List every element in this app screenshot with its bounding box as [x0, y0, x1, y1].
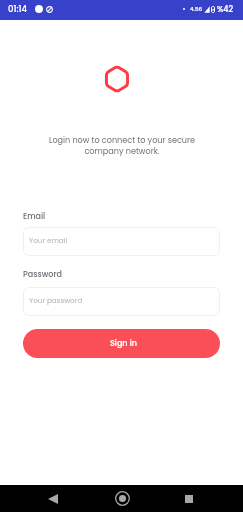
staticText: 01:14 [8, 3, 27, 15]
staticText: 4.56 [190, 5, 202, 13]
button[interactable]: Recent apps [169, 485, 209, 512]
button[interactable]: Home [102, 485, 142, 512]
staticText: %42 [217, 4, 234, 15]
button[interactable]: Sign in [23, 329, 220, 358]
staticText: Your password [29, 295, 83, 305]
button[interactable]: Back [33, 485, 73, 512]
staticText: Login now to connect to your secure comp… [37, 134, 207, 157]
staticText: Password [23, 269, 62, 280]
staticText: Email [23, 211, 46, 222]
staticText: Your email [29, 235, 68, 245]
button[interactable]: Your password [23, 287, 220, 316]
staticText: Sign in [110, 338, 137, 349]
button[interactable]: Your email [23, 227, 220, 256]
